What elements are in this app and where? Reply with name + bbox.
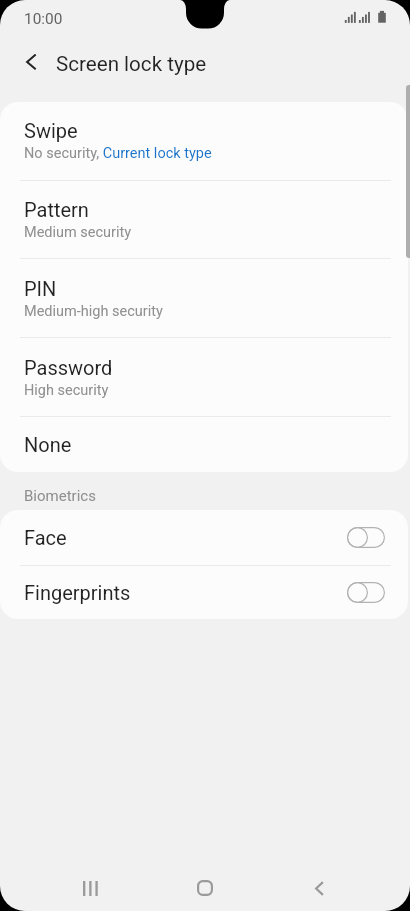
staticText: 10:00	[24, 10, 63, 28]
staticText: None	[24, 433, 72, 456]
staticText: High security	[24, 382, 109, 399]
staticText: Medium security	[24, 224, 132, 241]
button[interactable]: Recent apps	[68, 866, 112, 910]
staticText: Pattern	[24, 198, 89, 221]
button[interactable]: Face	[0, 510, 408, 565]
staticText: Screen lock type	[56, 52, 207, 76]
staticText: Password	[24, 356, 113, 379]
staticText: Biometrics	[24, 487, 96, 505]
button[interactable]: Fingerprints	[0, 566, 408, 619]
button[interactable]: Home	[183, 866, 227, 910]
staticText: PIN	[24, 277, 57, 300]
button[interactable]: Navigate up	[10, 42, 50, 82]
button[interactable]: Password	[0, 338, 408, 416]
staticText: Fingerprints	[24, 581, 131, 604]
staticText: Medium-high security	[24, 303, 163, 320]
staticText: Face	[24, 526, 67, 549]
staticText: No security, Current lock type	[24, 145, 212, 162]
button[interactable]: Swipe	[0, 102, 408, 180]
button[interactable]: Pattern	[0, 181, 408, 258]
staticText: Swipe	[24, 119, 78, 142]
button[interactable]: None	[0, 417, 408, 472]
button[interactable]: Back	[297, 866, 341, 910]
button[interactable]: PIN	[0, 259, 408, 337]
